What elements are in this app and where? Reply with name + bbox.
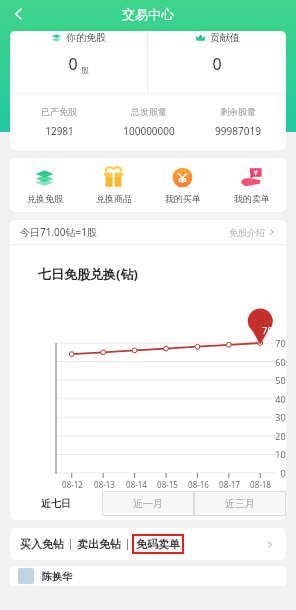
- staticText: 10: [275, 448, 286, 460]
- staticText: 七日免股兑换(钻): [38, 265, 138, 283]
- button[interactable]: 近七日: [10, 491, 102, 516]
- button[interactable]: 总发股量: [104, 106, 193, 138]
- button[interactable]: 买入免钻: [20, 537, 64, 551]
- staticText: 你的免股: [66, 31, 106, 44]
- staticText: 交易中心: [122, 6, 174, 22]
- staticText: 08-12: [62, 479, 83, 490]
- button[interactable]: 你的免股: [10, 31, 147, 75]
- staticText: 0: [68, 53, 78, 75]
- staticText: 08-13: [94, 479, 115, 490]
- button[interactable]: 已产免股: [14, 106, 104, 138]
- staticText: 贡献值: [210, 31, 240, 44]
- staticText: 20: [275, 430, 286, 442]
- staticText: 08-17: [219, 479, 240, 490]
- button[interactable]: 兑换免股: [10, 167, 79, 204]
- staticText: 12981: [45, 124, 74, 138]
- staticText: 近七日: [41, 497, 71, 510]
- staticText: 兑换免股: [27, 193, 63, 204]
- button[interactable]: More: [262, 537, 276, 551]
- staticText: 免码卖单: [136, 537, 180, 551]
- staticText: 100000000: [123, 124, 175, 138]
- staticText: 卖出免钻: [77, 537, 121, 551]
- staticText: 30: [275, 411, 286, 423]
- button[interactable]: 今日71.00钻=1股: [10, 220, 286, 244]
- staticText: 股: [81, 65, 89, 75]
- staticText: 0: [212, 53, 222, 75]
- button[interactable]: 我的卖单: [217, 167, 286, 204]
- staticText: 50: [275, 374, 286, 386]
- staticText: 60: [275, 356, 286, 368]
- staticText: 已产免股: [41, 106, 77, 117]
- staticText: 40: [275, 393, 286, 405]
- staticText: 今日71.00钻=1股: [20, 225, 97, 239]
- button[interactable]: 兑换商品: [79, 167, 148, 204]
- staticText: 0: [280, 467, 286, 479]
- staticText: 99987019: [215, 124, 261, 138]
- staticText: 总发股量: [131, 106, 167, 117]
- button[interactable]: 免码卖单: [132, 534, 184, 554]
- button[interactable]: 近三月: [194, 491, 286, 516]
- staticText: 兑换商品: [96, 193, 132, 204]
- staticText: 08-18: [250, 479, 271, 490]
- staticText: 剩余股量: [220, 106, 256, 117]
- staticText: 买入免钻: [20, 537, 64, 551]
- staticText: 免股介绍: [229, 227, 265, 238]
- button[interactable]: Back: [4, 0, 34, 27]
- staticText: 08-15: [157, 479, 178, 490]
- button[interactable]: 贡献值: [148, 31, 286, 75]
- staticText: 08-16: [188, 479, 209, 490]
- staticText: 08-14: [126, 479, 147, 490]
- button[interactable]: 我的买单: [148, 167, 217, 204]
- button[interactable]: 陈换华: [10, 566, 286, 586]
- staticText: 近三月: [225, 497, 255, 510]
- button[interactable]: 剩余股量: [193, 106, 282, 138]
- staticText: 陈换华: [42, 570, 72, 583]
- staticText: 我的买单: [165, 193, 201, 204]
- staticText: 70: [275, 337, 286, 349]
- button[interactable]: 卖出免钻: [77, 537, 121, 551]
- button[interactable]: 近一月: [102, 491, 194, 516]
- staticText: 我的卖单: [234, 193, 270, 204]
- staticText: 近一月: [133, 497, 163, 510]
- staticText: 70: [262, 324, 273, 336]
